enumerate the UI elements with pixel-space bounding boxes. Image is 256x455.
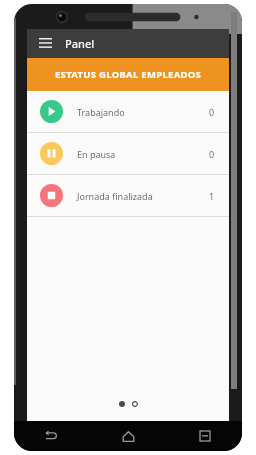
button[interactable]: Page 1, selected xyxy=(119,401,125,407)
staticText: En pausa xyxy=(77,148,209,160)
staticText: Panel xyxy=(65,36,95,51)
button[interactable]: Recent apps xyxy=(194,425,216,447)
button[interactable]: Page 2 xyxy=(132,401,138,407)
button[interactable]: Trabajando xyxy=(27,91,229,132)
staticText: Trabajando xyxy=(77,106,209,118)
staticText: 0 xyxy=(209,148,215,160)
button[interactable]: En pausa xyxy=(27,133,229,174)
button[interactable]: Home xyxy=(117,425,139,447)
button[interactable]: ESTATUS GLOBAL EMPLEADOS xyxy=(27,58,229,91)
button[interactable]: Jornada finalizada xyxy=(27,175,229,216)
button[interactable]: Back xyxy=(40,425,62,447)
staticText: Jornada finalizada xyxy=(77,190,209,202)
staticText: 1 xyxy=(209,190,215,202)
staticText: 0 xyxy=(209,106,215,118)
button[interactable]: Open navigation menu xyxy=(34,33,56,55)
staticText: ESTATUS GLOBAL EMPLEADOS xyxy=(55,68,202,81)
